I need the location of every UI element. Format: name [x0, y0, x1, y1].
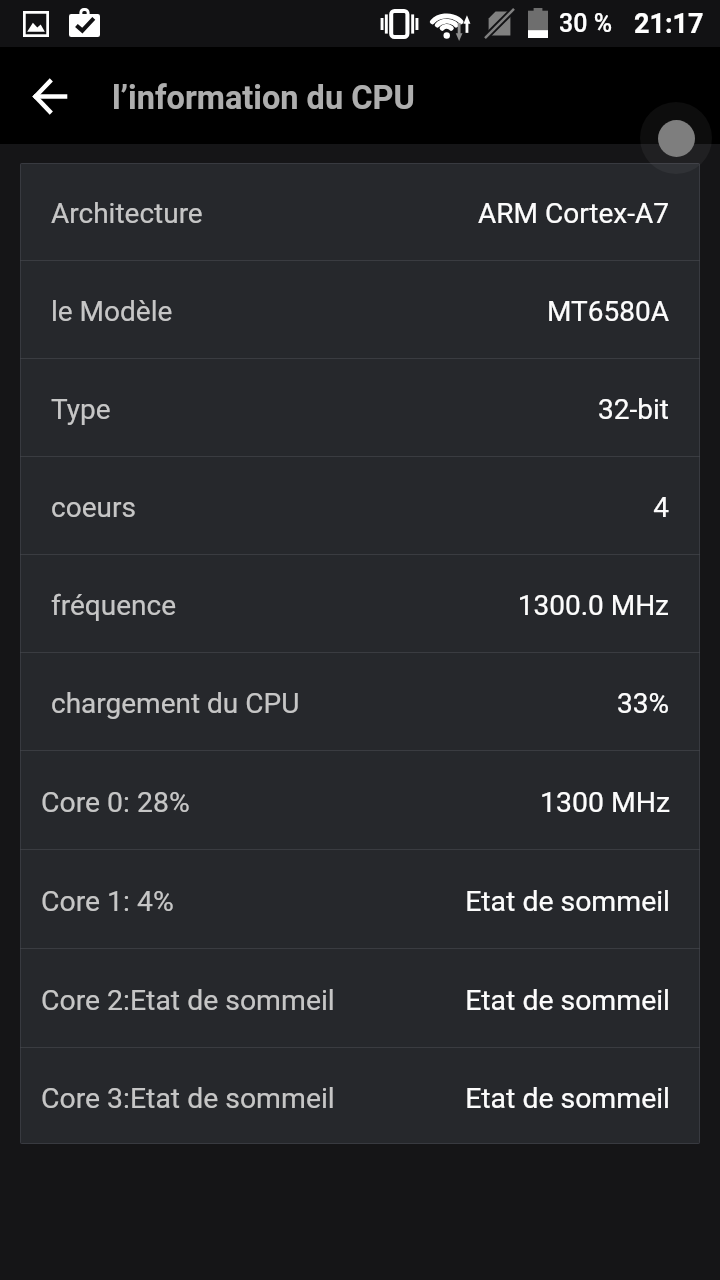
- staticText: Architecture: [51, 197, 203, 230]
- button[interactable]: Core 3:Etat de sommeil: [20, 1048, 700, 1144]
- staticText: 1300 MHz: [540, 786, 670, 819]
- staticText: le Modèle: [51, 295, 173, 328]
- staticText: coeurs: [51, 491, 136, 524]
- staticText: Etat de sommeil: [465, 1082, 670, 1115]
- button[interactable]: chargement du CPU: [20, 653, 700, 750]
- staticText: 1300.0 MHz: [517, 589, 669, 622]
- staticText: l’information du CPU: [112, 79, 415, 117]
- staticText: 32-bit: [598, 393, 669, 426]
- staticText: ARM Cortex-A7: [478, 197, 669, 230]
- button[interactable]: Assistive touch: [640, 102, 712, 174]
- button[interactable]: Core 0: 28%: [20, 751, 700, 849]
- button[interactable]: Back: [18, 64, 82, 128]
- staticText: fréquence: [51, 589, 176, 622]
- button[interactable]: Core 2:Etat de sommeil: [20, 949, 700, 1047]
- staticText: 4: [653, 491, 669, 524]
- staticText: Etat de sommeil: [465, 885, 670, 918]
- staticText: Core 1: 4%: [41, 885, 174, 918]
- staticText: Core 2:Etat de sommeil: [41, 984, 335, 1017]
- button[interactable]: Core 1: 4%: [20, 850, 700, 948]
- button[interactable]: coeurs: [20, 457, 700, 554]
- button[interactable]: Architecture: [20, 163, 700, 260]
- staticText: 21:17: [634, 8, 704, 40]
- staticText: Type: [51, 393, 111, 426]
- staticText: 33%: [617, 687, 669, 720]
- staticText: Etat de sommeil: [465, 984, 670, 1017]
- button[interactable]: le Modèle: [20, 261, 700, 358]
- staticText: chargement du CPU: [51, 687, 300, 720]
- button[interactable]: Type: [20, 359, 700, 456]
- staticText: Core 3:Etat de sommeil: [41, 1082, 335, 1115]
- staticText: Core 0: 28%: [41, 786, 190, 819]
- staticText: MT6580A: [547, 295, 669, 328]
- staticText: 30 %: [559, 9, 613, 38]
- button[interactable]: fréquence: [20, 555, 700, 652]
